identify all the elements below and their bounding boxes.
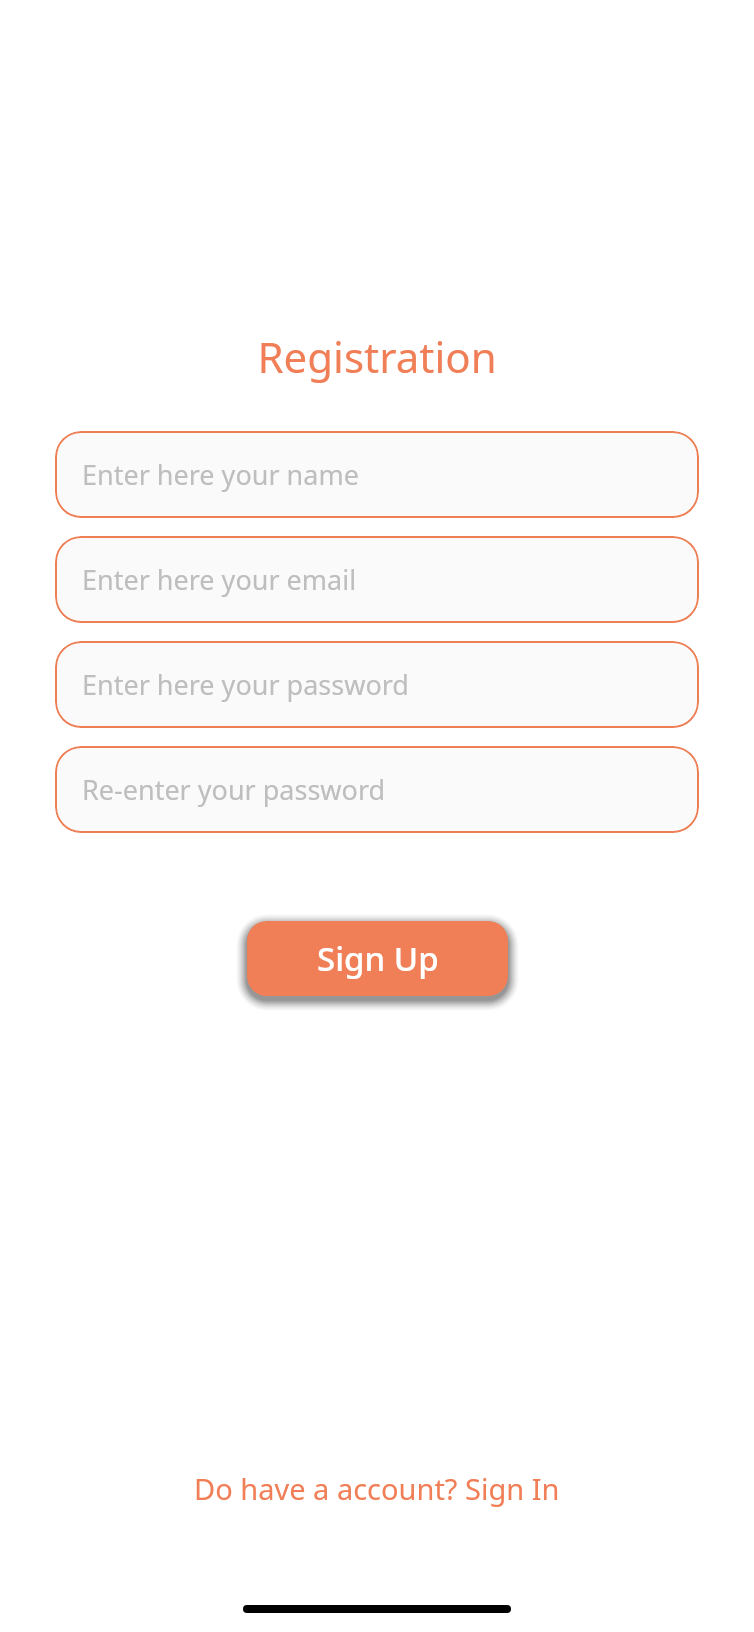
staticText: Registration: [0, 328, 754, 385]
button[interactable]: Re-enter your password: [55, 746, 699, 833]
staticText: Sign Up: [317, 936, 439, 981]
staticText: Enter here your name: [82, 456, 359, 493]
other: Home indicator: [243, 1605, 511, 1613]
button[interactable]: Do have a account? Sign In: [188, 1463, 566, 1514]
button[interactable]: Sign Up: [247, 921, 508, 996]
staticText: Enter here your email: [82, 561, 357, 598]
staticText: Re-enter your password: [82, 771, 386, 808]
button[interactable]: Enter here your name: [55, 431, 699, 518]
staticText: Enter here your password: [82, 666, 409, 703]
button[interactable]: Enter here your email: [55, 536, 699, 623]
button[interactable]: Enter here your password: [55, 641, 699, 728]
